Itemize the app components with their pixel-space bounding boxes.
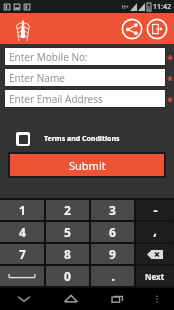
- button[interactable]: 6: [91, 222, 134, 242]
- button[interactable]: Submit: [10, 154, 164, 176]
- staticText: 4: [19, 224, 26, 240]
- button[interactable]: Logout: [146, 18, 168, 40]
- button[interactable]: Next: [136, 266, 174, 286]
- staticText: -: [153, 201, 158, 219]
- button[interactable]: Terms and Conditions: [16, 132, 174, 146]
- staticText: 0: [64, 268, 71, 284]
- button[interactable]: Hide keyboard: [14, 289, 34, 309]
- button[interactable]: Enter Mobile No:: [5, 48, 165, 65]
- staticText: 2: [64, 202, 71, 218]
- staticText: *: [167, 51, 173, 66]
- staticText: *: [167, 72, 173, 87]
- button[interactable]: 7: [0, 244, 44, 264]
- staticText: Enter Name: [9, 71, 65, 85]
- staticText: *: [167, 93, 173, 108]
- staticText: Terms and Conditions: [44, 134, 120, 144]
- button[interactable]: 5: [46, 222, 89, 242]
- button[interactable]: Enter Name: [5, 69, 165, 86]
- button[interactable]: Home: [61, 289, 81, 309]
- button[interactable]: ,: [136, 222, 174, 242]
- button[interactable]: Delete: [136, 244, 174, 264]
- staticText: Submit: [69, 158, 106, 173]
- staticText: 9: [109, 246, 116, 262]
- button[interactable]: 1: [0, 200, 44, 220]
- staticText: Next: [145, 271, 165, 282]
- button[interactable]: 3: [91, 200, 134, 220]
- button[interactable]: Share: [121, 18, 143, 40]
- staticText: 8: [64, 246, 71, 262]
- staticText: ,: [153, 221, 157, 239]
- staticText: 7: [19, 246, 26, 262]
- staticText: 3: [109, 202, 116, 218]
- other: App logo: [13, 19, 33, 39]
- button[interactable]: -: [136, 200, 174, 220]
- button[interactable]: Space: [0, 266, 44, 286]
- staticText: 5: [64, 224, 71, 240]
- staticText: 1: [19, 202, 26, 218]
- button[interactable]: Recent apps: [108, 289, 128, 309]
- button[interactable]: 9: [91, 244, 134, 264]
- button[interactable]: 2: [46, 200, 89, 220]
- staticText: 11:42: [153, 2, 171, 12]
- staticText: H+: [122, 4, 129, 11]
- button[interactable]: 0: [46, 266, 89, 286]
- button[interactable]: .: [91, 266, 134, 286]
- button[interactable]: More options: [147, 289, 167, 309]
- staticText: 6: [109, 224, 116, 240]
- staticText: Enter Email Address: [9, 92, 103, 106]
- button[interactable]: 4: [0, 222, 44, 242]
- button[interactable]: Enter Email Address: [5, 90, 165, 107]
- button[interactable]: 8: [46, 244, 89, 264]
- staticText: .: [111, 267, 115, 285]
- staticText: Enter Mobile No:: [9, 50, 88, 64]
